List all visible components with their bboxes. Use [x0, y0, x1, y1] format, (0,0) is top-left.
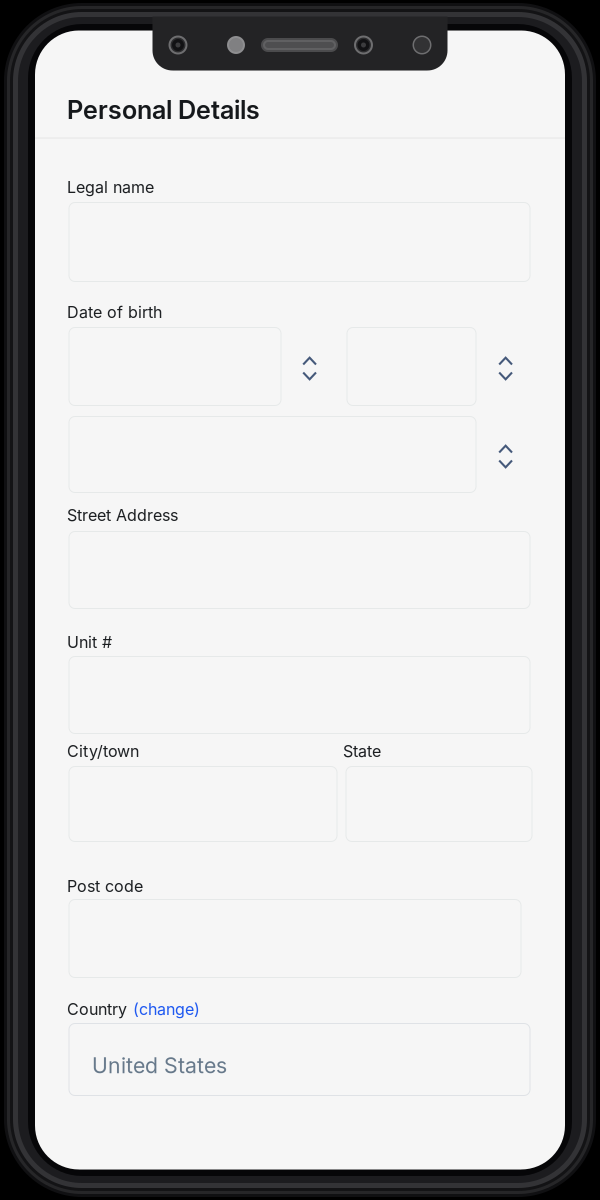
staticText: City/town: [67, 741, 139, 761]
button[interactable]: Change value: [489, 347, 522, 389]
staticText: Date of birth: [67, 302, 162, 322]
staticText: State: [343, 741, 381, 761]
staticText: Legal name: [67, 177, 154, 197]
button[interactable]: Change value: [489, 435, 522, 477]
staticText: (change): [133, 999, 200, 1019]
staticText: Street Address: [67, 505, 178, 525]
staticText: United States: [92, 1052, 227, 1078]
button[interactable]: (change): [133, 999, 200, 1019]
staticText: Personal Details: [67, 94, 260, 125]
button[interactable]: Change value: [293, 347, 326, 389]
staticText: Country: [67, 999, 127, 1019]
staticText: Unit #: [67, 632, 112, 652]
staticText: Post code: [67, 876, 143, 896]
